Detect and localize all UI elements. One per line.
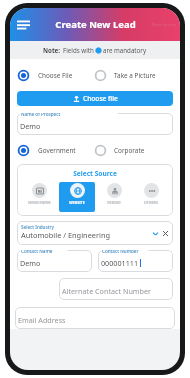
staticText: NEWS PAPER — [28, 200, 51, 205]
button[interactable]: WEBSITE — [59, 182, 95, 212]
staticText: WEBSITE — [69, 200, 85, 205]
staticText: Contact Number — [102, 250, 139, 254]
staticText: Select Industry — [21, 224, 54, 230]
staticText: OTHERS — [144, 200, 158, 205]
staticText: 000001111 — [101, 258, 139, 268]
staticText: Reset Services — [152, 22, 177, 27]
button[interactable]: Open dropdown — [151, 229, 160, 238]
staticText: Corporate — [114, 146, 145, 155]
button[interactable]: Alternate Contact Number — [59, 278, 173, 300]
button[interactable]: Choose file — [17, 91, 173, 106]
staticText: Select Source — [17, 169, 173, 178]
button[interactable]: Take a Picture — [95, 70, 172, 81]
button[interactable]: Clear selection — [161, 229, 170, 238]
staticText: Take a Picture — [114, 71, 156, 80]
staticText: FRIEND — [107, 200, 121, 205]
staticText: Name of Prospect — [21, 113, 61, 117]
button[interactable]: Reset Services — [152, 22, 177, 27]
staticText: Demo — [20, 258, 41, 268]
button[interactable]: 000001111 — [98, 250, 173, 272]
button[interactable]: Corporate — [95, 145, 172, 156]
staticText: Contact Name — [21, 250, 53, 254]
button[interactable]: Demo — [17, 250, 92, 272]
button[interactable]: OTHERS — [133, 182, 169, 212]
staticText: Demo — [20, 121, 41, 131]
button[interactable]: Email Address — [15, 307, 175, 329]
button[interactable]: FRIEND — [96, 182, 132, 212]
staticText: Alternate Contact Number — [62, 286, 151, 296]
button[interactable]: Menu — [14, 16, 32, 34]
button[interactable]: Select Industry — [17, 221, 173, 245]
staticText: Create New Lead — [55, 18, 136, 31]
button[interactable]: Government — [18, 145, 95, 156]
staticText: Automobile / Engineering — [21, 230, 111, 240]
staticText: Email Address — [18, 315, 66, 325]
staticText: Fields with — [63, 46, 94, 54]
button[interactable]: Demo — [17, 113, 173, 135]
button[interactable]: Choose File — [18, 70, 95, 81]
staticText: Note: — [43, 46, 61, 54]
staticText: Choose file — [83, 94, 118, 103]
staticText: Choose File — [38, 71, 73, 80]
staticText: Government — [38, 146, 76, 155]
button[interactable]: NEWS PAPER — [21, 182, 58, 212]
staticText: are mandatory — [103, 46, 147, 54]
